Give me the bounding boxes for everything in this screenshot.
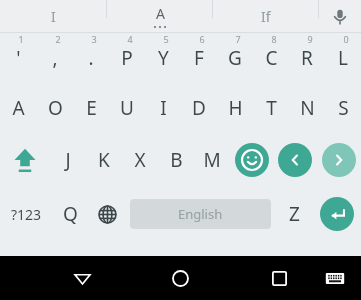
button[interactable]: A <box>107 0 212 33</box>
button[interactable]: C <box>253 33 289 83</box>
staticText: A <box>156 4 165 23</box>
button[interactable]: I <box>0 0 106 33</box>
button[interactable]: O <box>37 83 73 133</box>
button[interactable]: R <box>289 33 325 83</box>
button[interactable]: H <box>217 83 253 133</box>
button[interactable]: Change language <box>88 187 126 241</box>
button[interactable]: Back <box>60 256 104 300</box>
staticText: P <box>121 45 133 71</box>
button[interactable]: Home <box>158 256 202 300</box>
button[interactable]: L <box>325 33 361 83</box>
staticText: 3 <box>91 33 97 45</box>
button[interactable]: Voice input <box>319 0 361 33</box>
button[interactable]: T <box>253 83 289 133</box>
staticText: If <box>261 7 271 26</box>
staticText: 1 <box>18 33 24 45</box>
button[interactable]: N <box>289 83 325 133</box>
button[interactable]: B <box>158 133 194 187</box>
staticText: Q <box>63 201 78 227</box>
staticText: G <box>228 45 242 71</box>
staticText: 4 <box>127 33 133 45</box>
button[interactable]: A <box>0 83 37 133</box>
button[interactable]: , <box>37 33 73 83</box>
button[interactable]: Q <box>52 187 88 241</box>
button[interactable]: If <box>213 0 318 33</box>
button[interactable]: English <box>130 199 271 229</box>
staticText: E <box>86 95 97 121</box>
staticText: U <box>120 95 134 121</box>
staticText: 8 <box>271 33 277 45</box>
staticText: English <box>178 205 223 223</box>
staticText: F <box>194 45 204 71</box>
button[interactable]: Emoji <box>230 133 273 187</box>
button[interactable]: Shift <box>0 133 50 187</box>
staticText: Z <box>289 201 300 227</box>
button[interactable]: U <box>109 83 145 133</box>
staticText: X <box>134 147 146 173</box>
staticText: T <box>266 95 277 121</box>
staticText: 6 <box>199 33 205 45</box>
button[interactable]: I <box>145 83 181 133</box>
button[interactable]: Y <box>145 33 181 83</box>
button[interactable]: Enter <box>313 187 361 241</box>
button[interactable]: ' <box>0 33 37 83</box>
button[interactable]: Next <box>316 133 361 187</box>
button[interactable]: E <box>73 83 109 133</box>
button[interactable]: M <box>194 133 230 187</box>
button[interactable]: K <box>86 133 122 187</box>
staticText: I <box>160 95 167 121</box>
staticText: Y <box>158 45 169 71</box>
button[interactable]: S <box>325 83 361 133</box>
button[interactable]: F <box>181 33 217 83</box>
staticText: C <box>265 45 278 71</box>
staticText: O <box>48 95 63 121</box>
staticText: B <box>170 147 183 173</box>
staticText: A <box>12 95 25 121</box>
button[interactable]: Z <box>275 187 313 241</box>
staticText: 2 <box>55 33 61 45</box>
staticText: N <box>300 95 315 121</box>
staticText: 5 <box>163 33 169 45</box>
staticText: J <box>65 147 71 173</box>
button[interactable]: Previous <box>273 133 316 187</box>
button[interactable]: Switch keyboard <box>315 258 355 298</box>
staticText: H <box>228 95 243 121</box>
staticText: . <box>88 45 94 71</box>
staticText: , <box>52 45 58 71</box>
button[interactable]: X <box>122 133 158 187</box>
staticText: K <box>98 147 110 173</box>
staticText: 9 <box>307 33 313 45</box>
button[interactable]: . <box>73 33 109 83</box>
staticText: 7 <box>235 33 241 45</box>
staticText: S <box>338 95 349 121</box>
staticText: L <box>338 45 348 71</box>
staticText: ' <box>16 45 21 71</box>
button[interactable]: Recents <box>257 256 301 300</box>
button[interactable]: J <box>50 133 86 187</box>
staticText: ?123 <box>11 205 42 224</box>
staticText: M <box>203 147 221 173</box>
button[interactable]: P <box>109 33 145 83</box>
button[interactable]: D <box>181 83 217 133</box>
button[interactable]: ?123 <box>0 187 52 241</box>
staticText: 0 <box>343 33 349 45</box>
staticText: I <box>51 7 56 26</box>
staticText: R <box>301 45 313 71</box>
button[interactable]: G <box>217 33 253 83</box>
staticText: D <box>192 95 206 121</box>
